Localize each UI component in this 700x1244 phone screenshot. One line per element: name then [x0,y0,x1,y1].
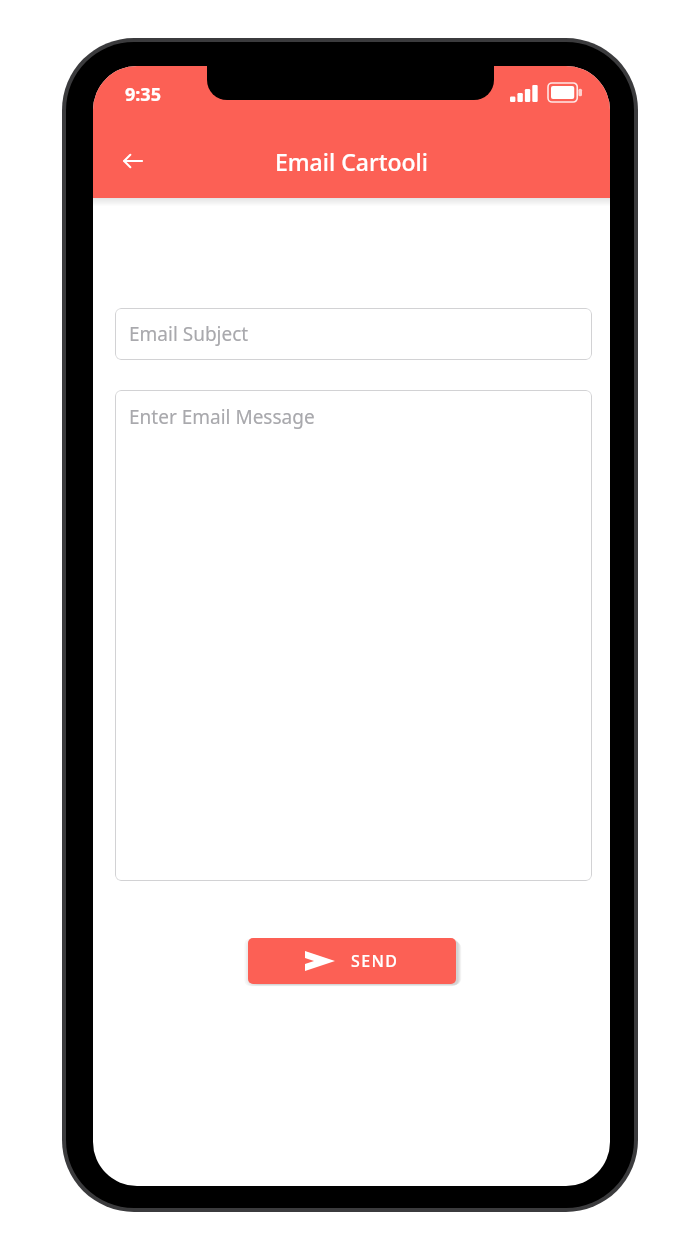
staticText: SEND [351,950,399,972]
button[interactable]: Email Subject [115,308,592,360]
staticText: 9:35 [125,82,161,107]
button[interactable]: SEND [248,938,456,984]
button[interactable]: Enter Email Message [115,390,592,881]
staticText: Email Subject [129,321,249,347]
staticText: Enter Email Message [129,404,315,430]
button[interactable]: Back [109,137,157,185]
staticText: Email Cartooli [275,146,428,177]
